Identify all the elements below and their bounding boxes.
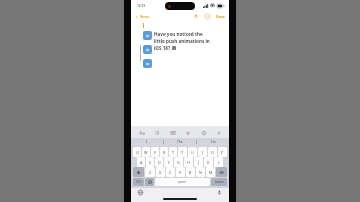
staticText: S (149, 160, 151, 165)
button[interactable]: Attach (182, 127, 193, 138)
staticText: D (158, 160, 161, 165)
button[interactable]: 123 (133, 178, 144, 186)
button[interactable]: P (218, 147, 227, 157)
staticText: return (215, 180, 224, 184)
staticText: G (177, 160, 180, 165)
button[interactable]: Keyboard globe (137, 189, 144, 196)
button[interactable]: M (206, 167, 215, 177)
button[interactable]: Table (167, 127, 178, 138)
button[interactable]: Markup (198, 127, 209, 138)
staticText: J (198, 160, 199, 165)
staticText: 12:13 (137, 4, 146, 8)
staticText: X (159, 170, 162, 175)
button[interactable]: space (155, 178, 210, 186)
staticText: Done (216, 14, 225, 19)
button[interactable]: E (151, 147, 159, 157)
staticText: little push animations in (154, 38, 210, 44)
staticText: C (169, 170, 172, 175)
button[interactable]: return (211, 178, 227, 186)
staticText: 123 (136, 180, 141, 184)
staticText: F (168, 160, 170, 165)
button[interactable]: I (198, 147, 207, 157)
staticText: V (179, 170, 182, 175)
staticText: A (140, 160, 143, 165)
staticText: Y (181, 150, 184, 155)
staticText: I (202, 150, 204, 155)
button[interactable]: L (214, 157, 223, 167)
staticText: W (144, 150, 148, 155)
staticText: Notes (140, 14, 150, 19)
staticText: P (221, 150, 224, 155)
staticText: E (154, 150, 156, 155)
button[interactable]: Insert item 2 (143, 45, 152, 54)
staticText: Q (136, 150, 139, 155)
staticText: L (218, 160, 220, 165)
button[interactable]: I (131, 138, 163, 146)
staticText: O (211, 150, 214, 155)
button[interactable]: J (194, 157, 203, 167)
button[interactable]: R (160, 147, 168, 157)
staticText: space (178, 180, 187, 184)
button[interactable]: Insert item 1 (143, 31, 152, 40)
staticText: I'm (211, 140, 216, 144)
staticText: iOS 18? (154, 45, 172, 51)
button[interactable]: Insert item 3 (143, 59, 152, 68)
button[interactable]: B (186, 167, 195, 177)
staticText: Have you noticed the (154, 31, 203, 37)
staticText: T (172, 150, 174, 155)
button[interactable]: F (164, 157, 173, 167)
button[interactable]: Text format (136, 127, 147, 138)
button[interactable]: Emoji (145, 178, 154, 186)
button[interactable]: Y (178, 147, 187, 157)
button[interactable]: G (174, 157, 183, 167)
button[interactable]: More options (204, 13, 210, 19)
button[interactable]: H (184, 157, 193, 167)
button[interactable]: Checklist (151, 127, 162, 138)
staticText: B (189, 170, 192, 175)
button[interactable]: W (142, 147, 150, 157)
button[interactable]: T (169, 147, 177, 157)
button[interactable]: A (137, 157, 145, 167)
button[interactable]: N (196, 167, 205, 177)
button[interactable]: K (204, 157, 213, 167)
staticText: The (177, 140, 183, 144)
button[interactable]: Q (133, 147, 141, 157)
staticText: H (187, 160, 190, 165)
button[interactable]: Done (215, 14, 226, 19)
button[interactable]: The (164, 138, 196, 146)
button[interactable]: Shift (133, 167, 144, 177)
button[interactable]: Dictate (216, 189, 223, 196)
staticText: K (207, 160, 210, 165)
button[interactable]: C (166, 167, 175, 177)
staticText: I (146, 140, 148, 144)
button[interactable]: Z (145, 167, 155, 177)
button[interactable]: Notes (134, 13, 151, 20)
button[interactable]: Share (193, 13, 199, 19)
button[interactable]: X (156, 167, 165, 177)
staticText: R (163, 150, 166, 155)
button[interactable]: Delete (216, 167, 227, 177)
button[interactable]: I'm (197, 138, 229, 146)
button[interactable]: D (155, 157, 163, 167)
staticText: Z (149, 170, 152, 175)
button[interactable]: S (146, 157, 154, 167)
staticText: N (199, 170, 202, 175)
button[interactable]: Close keyboard (213, 127, 224, 138)
staticText: U (191, 150, 194, 155)
button[interactable]: U (188, 147, 197, 157)
button[interactable]: V (176, 167, 185, 177)
staticText: M (209, 170, 213, 175)
button[interactable]: O (208, 147, 217, 157)
